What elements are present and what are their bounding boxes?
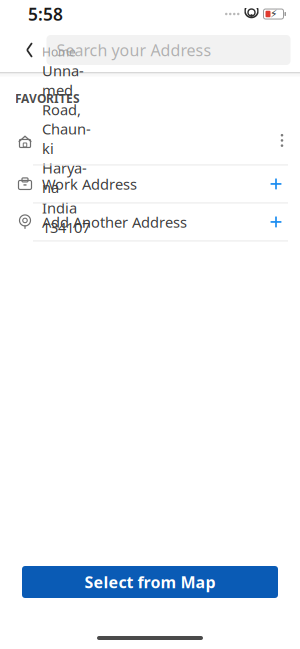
staticText: ⚡︎ (270, 8, 277, 20)
button[interactable]: Work Address (0, 165, 300, 202)
button[interactable]: Add Another Address (0, 203, 300, 240)
staticText: Add Another Address (42, 212, 187, 232)
staticText: Work Address (42, 174, 137, 194)
button[interactable]: Search your Address (46, 35, 290, 65)
staticText: Home (42, 44, 76, 60)
staticText: Unnamed Road, Chaunki Haryana (42, 61, 91, 197)
staticText: India 134107 (42, 198, 90, 237)
button[interactable]: Home (0, 116, 300, 164)
button[interactable]: Back (12, 30, 46, 70)
staticText: Select from Map (84, 571, 215, 593)
staticText: FAVORITES (15, 90, 80, 106)
staticText: Search your Address (56, 39, 211, 61)
button[interactable]: Select from Map (22, 566, 278, 598)
staticText: 5:58 (28, 2, 63, 25)
